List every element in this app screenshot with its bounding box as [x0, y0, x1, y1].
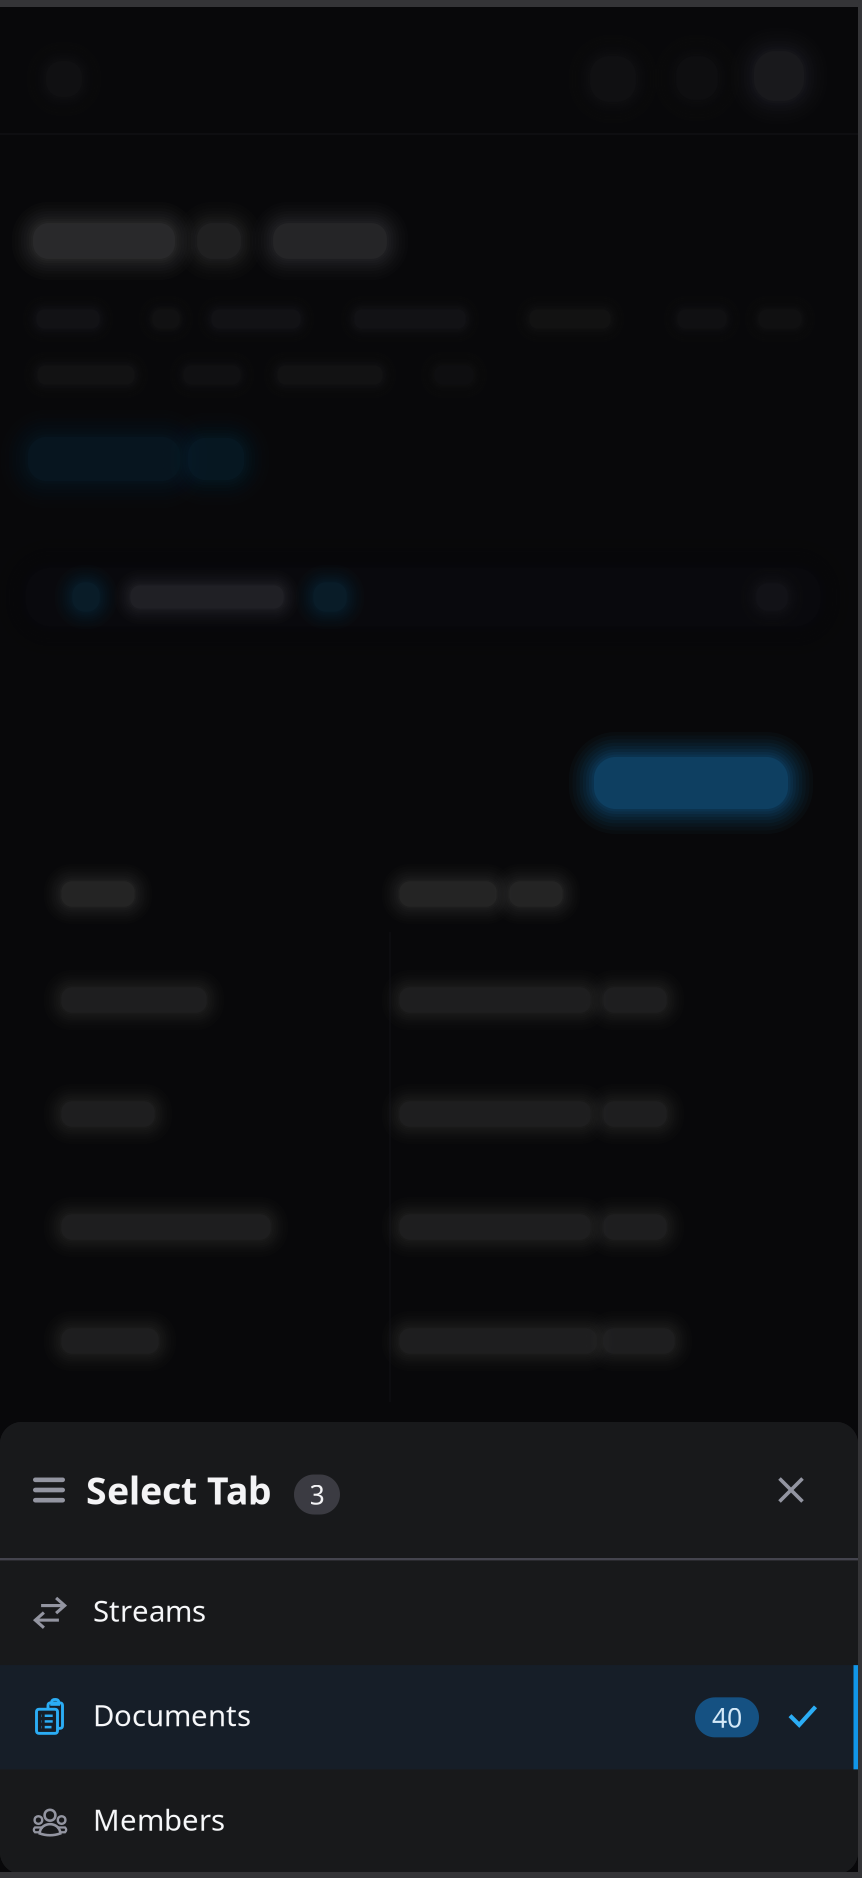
button[interactable]: Members	[0, 1770, 858, 1874]
staticText: Select Tab	[86, 1465, 272, 1515]
button[interactable]: Documents	[0, 1665, 858, 1770]
staticText: 40	[712, 1700, 742, 1735]
staticText: Documents	[93, 1695, 251, 1734]
staticText: Members	[93, 1800, 225, 1839]
button[interactable]: Close	[760, 1459, 858, 1521]
staticText: 3	[309, 1477, 324, 1512]
button[interactable]: Streams	[0, 1561, 858, 1665]
button[interactable]: Menu	[0, 1462, 77, 1518]
staticText: Streams	[93, 1591, 206, 1630]
